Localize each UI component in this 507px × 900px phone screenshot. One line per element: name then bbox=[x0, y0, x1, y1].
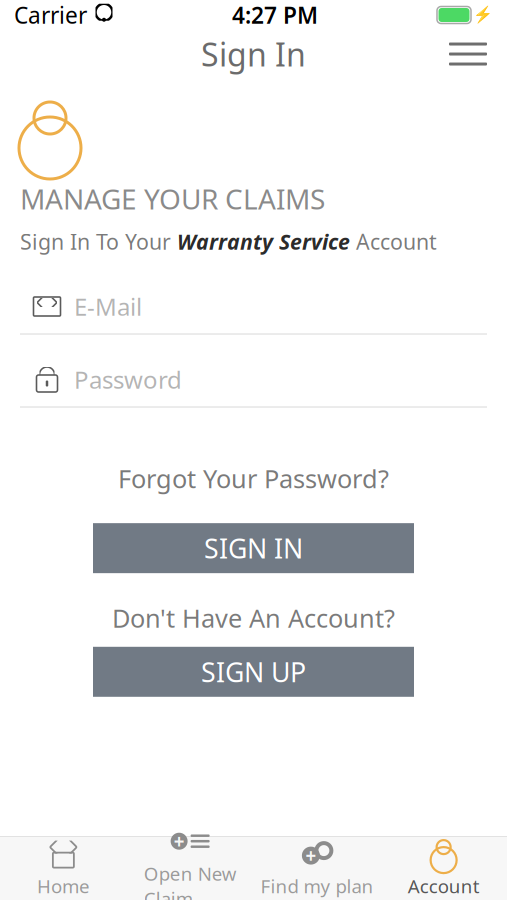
staticText: Warranty Service bbox=[177, 227, 350, 255]
staticText: SIGN UP bbox=[201, 654, 306, 689]
button[interactable]: SIGN UP bbox=[93, 647, 414, 697]
button[interactable]: Home bbox=[0, 837, 127, 900]
button[interactable]: + bbox=[127, 837, 254, 900]
staticText: Don't Have An Account? bbox=[112, 601, 395, 635]
staticText: Carrier bbox=[14, 0, 87, 30]
staticText: ⚡ bbox=[473, 6, 493, 24]
button[interactable]: Forgot Your Password? bbox=[108, 455, 399, 501]
staticText: + bbox=[174, 829, 185, 854]
staticText: Password bbox=[74, 364, 182, 395]
staticText: Account bbox=[408, 874, 480, 898]
staticText: Home bbox=[37, 874, 90, 898]
staticText: Open New Claim bbox=[144, 861, 237, 900]
button[interactable]: + bbox=[253, 837, 380, 900]
staticText: E-Mail bbox=[74, 291, 142, 322]
staticText: Account bbox=[350, 227, 437, 255]
staticText: SIGN IN bbox=[204, 530, 303, 566]
button[interactable]: Menu bbox=[437, 32, 499, 75]
button[interactable]: SIGN IN bbox=[93, 523, 414, 573]
button[interactable]: Don't Have An Account? bbox=[102, 595, 405, 641]
staticText: Sign In bbox=[201, 33, 306, 75]
staticText: MANAGE YOUR CLAIMS bbox=[20, 180, 325, 217]
button[interactable]: Account bbox=[380, 837, 507, 900]
staticText: + bbox=[305, 843, 316, 868]
staticText: Sign In To Your bbox=[20, 227, 177, 255]
staticText: Find my plan bbox=[260, 874, 373, 898]
staticText: Forgot Your Password? bbox=[118, 461, 389, 495]
staticText: 4:27 PM bbox=[232, 0, 318, 30]
